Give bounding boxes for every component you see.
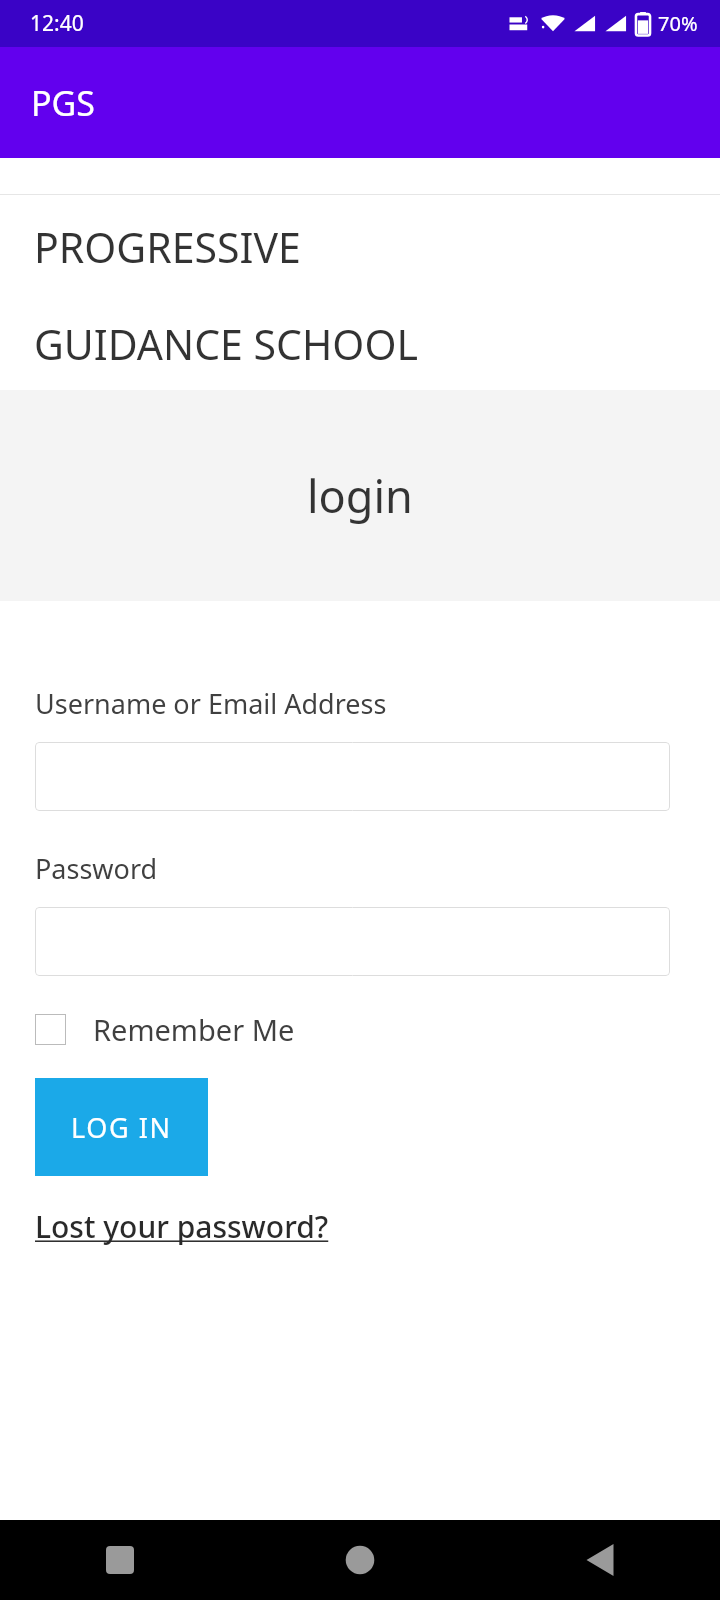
staticText: LOG IN — [71, 1109, 172, 1146]
staticText: PGS — [31, 80, 95, 126]
button[interactable] — [35, 742, 670, 811]
button[interactable]: Home — [240, 1520, 480, 1600]
staticText: PROGRESSIVE — [34, 219, 301, 275]
button[interactable]: Recent apps — [0, 1520, 240, 1600]
staticText: GUIDANCE SCHOOL — [34, 316, 418, 372]
staticText: login — [307, 465, 413, 526]
button[interactable]: Remember Me — [35, 1008, 295, 1051]
staticText: 12:40 — [30, 9, 84, 38]
staticText: Username or Email Address — [35, 685, 387, 722]
staticText: 70% — [658, 10, 698, 37]
button[interactable] — [35, 907, 670, 976]
button[interactable]: LOG IN — [35, 1078, 208, 1176]
staticText: Lost your password? — [35, 1206, 329, 1247]
staticText: Password — [35, 850, 158, 887]
staticText: Remember Me — [93, 1010, 295, 1049]
button[interactable]: Lost your password? — [35, 1206, 329, 1247]
button[interactable]: Back — [480, 1520, 720, 1600]
